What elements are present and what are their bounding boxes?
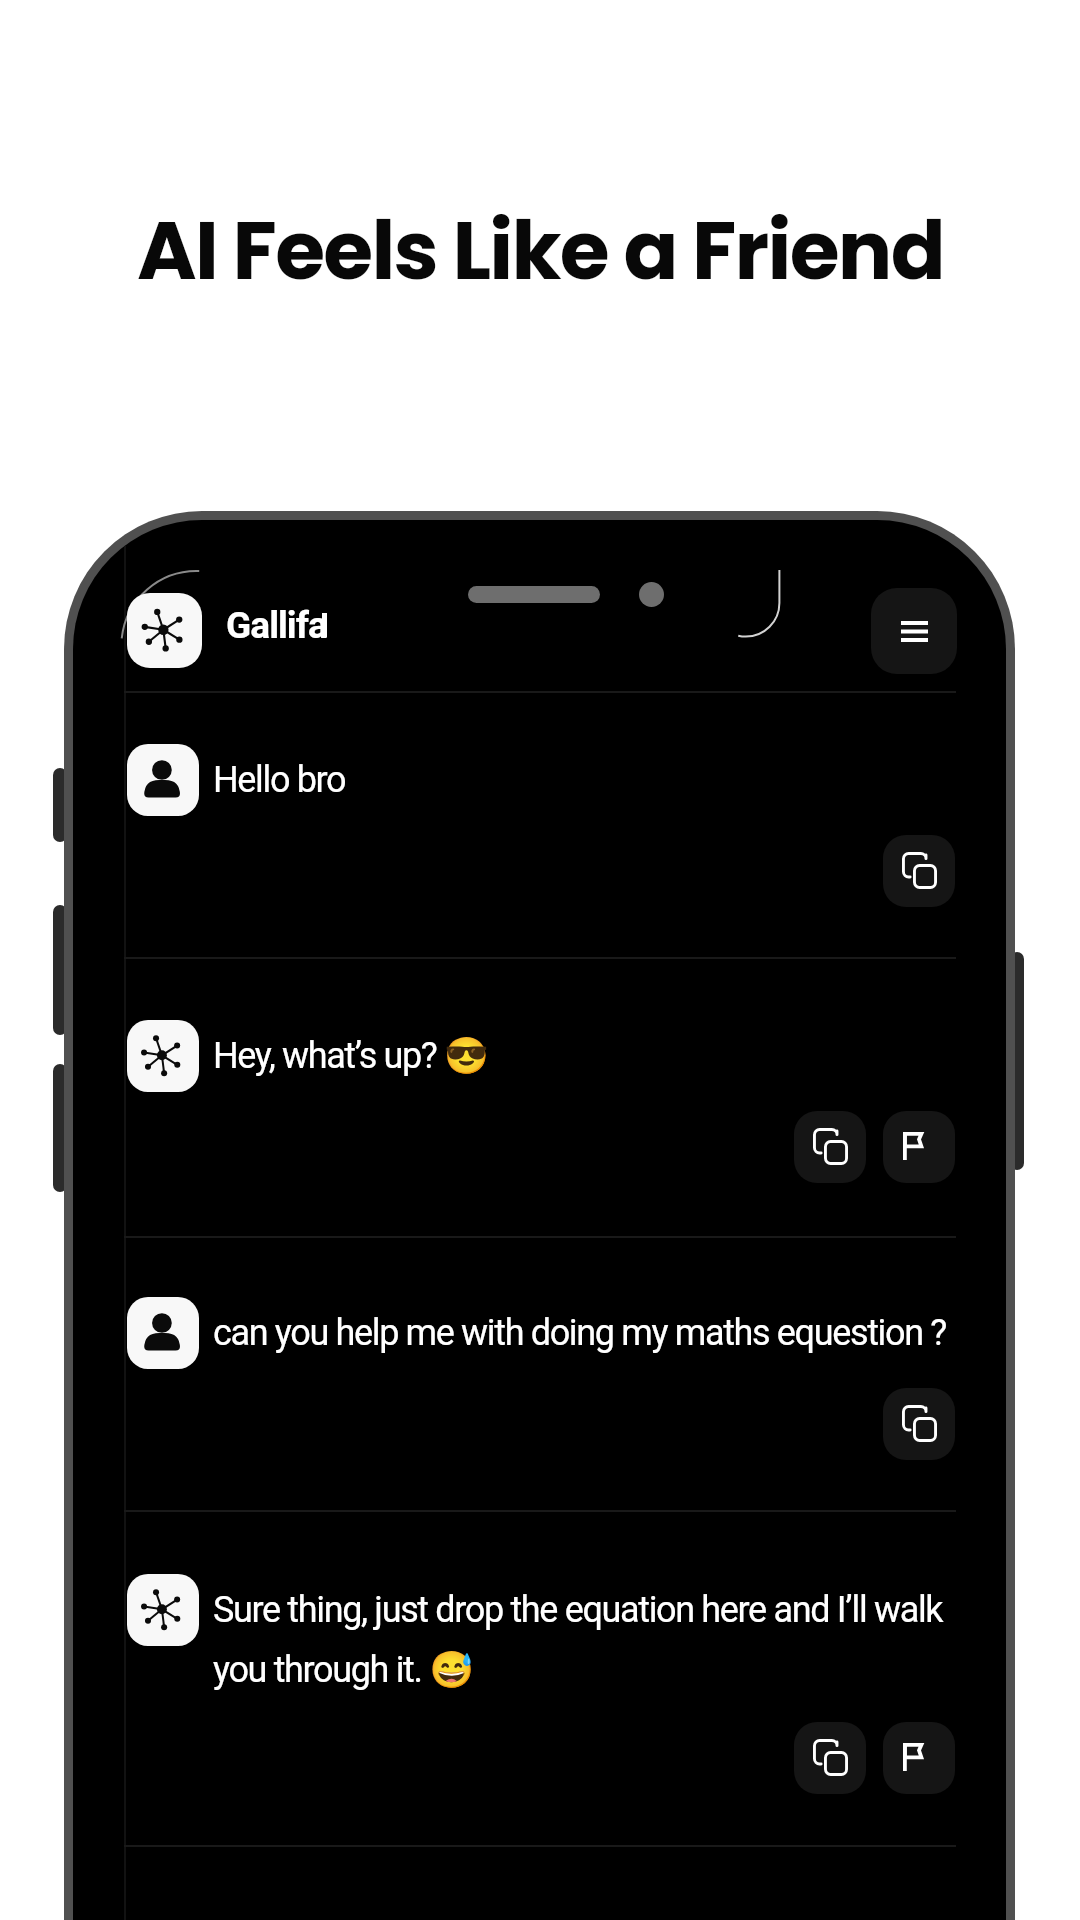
staticText: Sure thing, just drop the equation here …	[213, 1589, 955, 1690]
button[interactable]: Copy message	[794, 1722, 866, 1794]
button[interactable]: Open menu	[871, 588, 957, 674]
button[interactable]: Copy message	[883, 835, 955, 907]
button[interactable]: Report message	[883, 1111, 955, 1183]
button[interactable]: Report message	[883, 1722, 955, 1794]
button[interactable]: Gallifa	[226, 604, 327, 647]
button[interactable]: Copy message	[883, 1388, 955, 1460]
staticText: can you help me with doing my maths eque…	[213, 1312, 946, 1354]
staticText: AI Feels Like a Friend	[137, 194, 944, 307]
staticText: Hello bro	[213, 759, 346, 801]
button[interactable]: Copy message	[794, 1111, 866, 1183]
staticText: Hey, what’s up? 😎	[213, 1035, 488, 1077]
staticText: Gallifa	[226, 604, 327, 647]
button[interactable]	[127, 593, 202, 668]
